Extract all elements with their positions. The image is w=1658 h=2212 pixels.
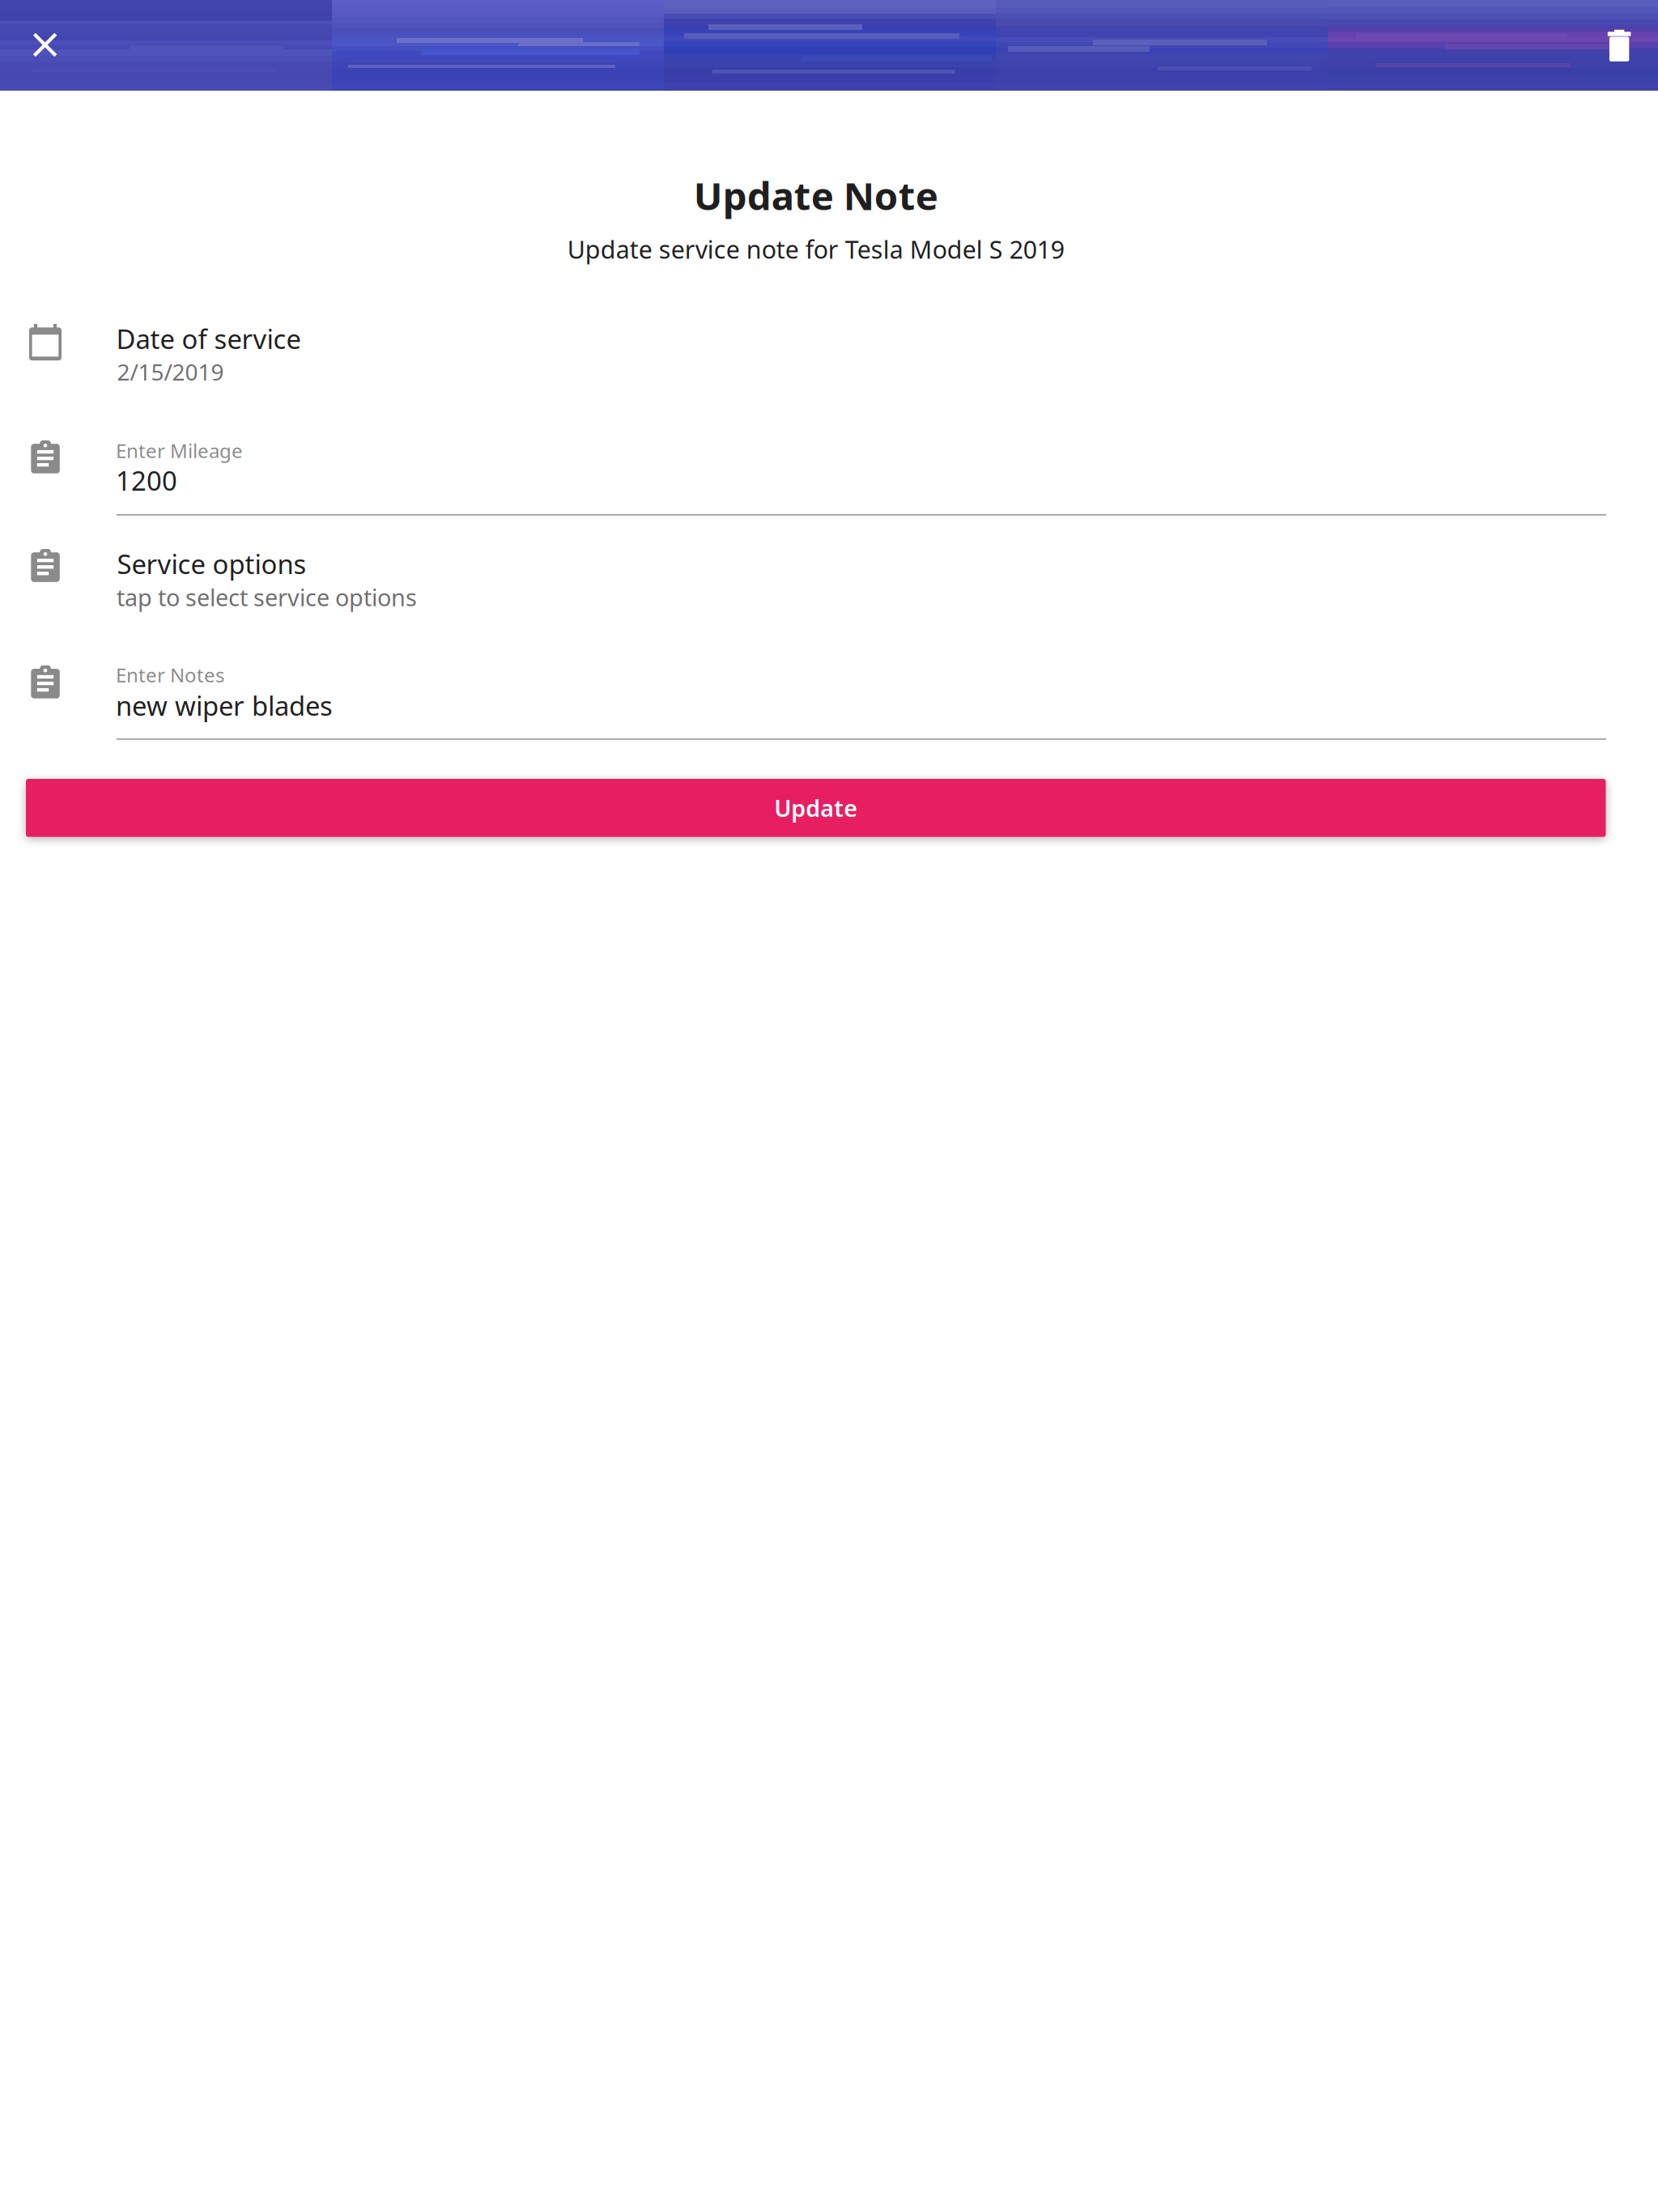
button[interactable]: Enter Mileage — [26, 437, 1606, 515]
staticText: Update — [774, 792, 857, 824]
button[interactable]: Close — [11, 11, 79, 79]
button[interactable]: Update — [26, 779, 1606, 837]
button[interactable]: Enter Notes — [26, 661, 1606, 739]
staticText: Service options — [117, 546, 307, 582]
staticText: Enter Notes — [116, 661, 224, 688]
staticText: Date of service — [116, 321, 301, 357]
staticText: new wiper blades — [116, 687, 333, 724]
button[interactable]: Date of service — [26, 321, 1606, 390]
staticText: Update service note for Tesla Model S 20… — [567, 232, 1064, 266]
staticText: 2/15/2019 — [117, 356, 224, 387]
button[interactable]: Service options — [26, 546, 1606, 615]
staticText: tap to select service options — [117, 581, 417, 613]
staticText: 1200 — [116, 462, 177, 499]
staticText: Update Note — [694, 169, 938, 221]
button[interactable]: Delete note — [1585, 11, 1653, 79]
staticText: Enter Mileage — [116, 437, 243, 464]
